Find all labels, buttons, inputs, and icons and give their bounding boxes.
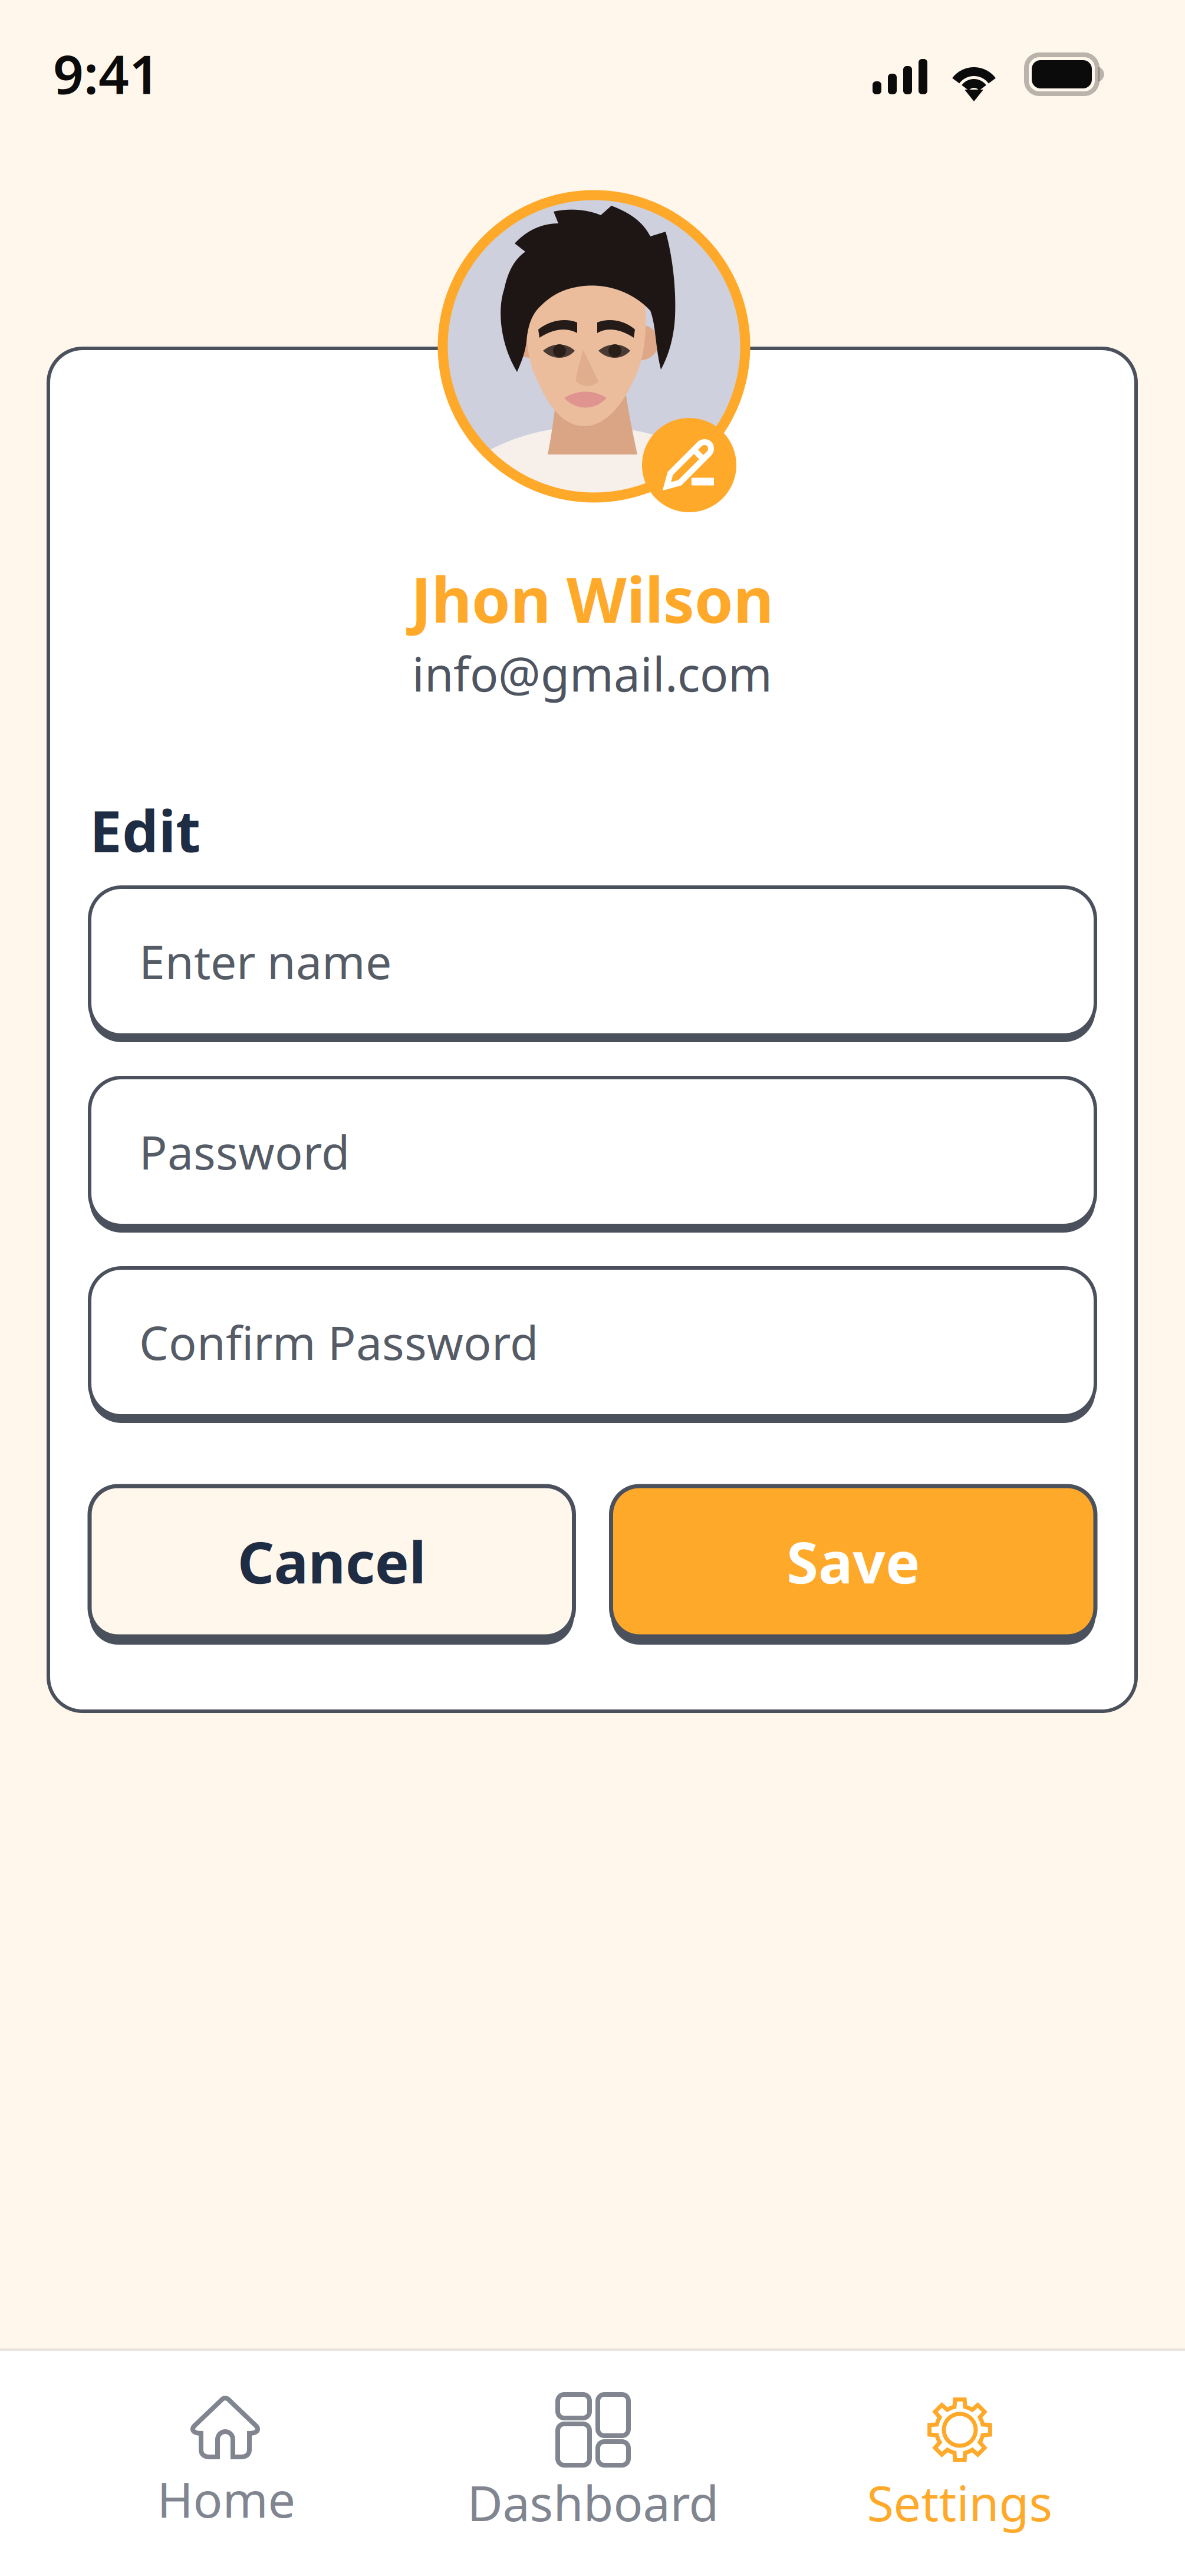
staticText: 9:41 xyxy=(53,38,160,109)
staticText: Confirm Password xyxy=(139,1311,538,1373)
staticText: Dashboard xyxy=(467,2470,719,2535)
staticText: Settings xyxy=(867,2470,1053,2535)
button[interactable]: Home xyxy=(43,2348,410,2576)
button[interactable]: Settings xyxy=(776,2348,1143,2576)
staticText: Save xyxy=(787,1523,920,1599)
staticText: Cancel xyxy=(237,1523,426,1599)
button[interactable]: Cancel xyxy=(90,1482,574,1641)
staticText: Jhon Wilson xyxy=(411,558,773,640)
button[interactable]: Dashboard xyxy=(410,2348,776,2576)
staticText: Enter name xyxy=(139,930,391,992)
button[interactable]: Password xyxy=(90,1074,1095,1229)
staticText: Home xyxy=(157,2466,296,2531)
button[interactable]: Confirm Password xyxy=(90,1264,1095,1419)
staticText: Edit xyxy=(90,792,200,868)
staticText: info@gmail.com xyxy=(412,642,772,705)
staticText: Password xyxy=(139,1121,350,1182)
button[interactable]: Edit profile photo xyxy=(642,418,736,512)
button[interactable]: Save xyxy=(611,1482,1095,1641)
button[interactable]: Enter name xyxy=(90,884,1095,1039)
